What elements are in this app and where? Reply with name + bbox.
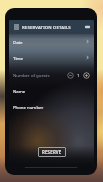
staticText: Date (13, 39, 23, 45)
button[interactable]: Menu (12, 23, 20, 31)
staticText: Name (13, 88, 26, 94)
staticText: Time (13, 55, 23, 61)
staticText: RESERVE (42, 149, 62, 155)
button[interactable]: Payment card (83, 23, 91, 31)
staticText: RESERVATION DETAILS (22, 24, 71, 30)
staticText: Number of guests (13, 72, 50, 78)
button[interactable]: Time (9, 49, 94, 66)
button[interactable]: RESERVE (38, 147, 66, 157)
button[interactable]: Add guest (83, 72, 90, 79)
button[interactable]: Date (9, 34, 94, 49)
button[interactable]: Remove guest (67, 72, 74, 79)
button[interactable]: Name (9, 84, 94, 98)
staticText: 1 (77, 72, 80, 78)
button[interactable]: Phone number (9, 98, 94, 115)
staticText: Phone number (13, 104, 44, 110)
